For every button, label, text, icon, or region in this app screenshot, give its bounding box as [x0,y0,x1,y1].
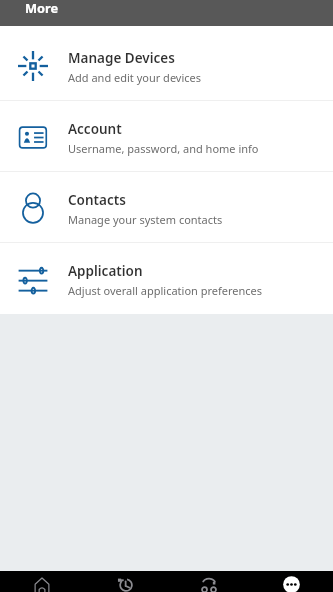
staticText: Application [68,262,143,280]
button[interactable]: More [250,574,333,592]
staticText: Manage Devices [68,49,175,67]
staticText: Username, password, and home info [68,141,259,156]
button[interactable]: Home [0,574,83,592]
staticText: More [25,0,59,16]
staticText: Adjust overall application preferences [68,283,263,298]
staticText: Add and edit your devices [68,70,202,85]
button[interactable]: Account [0,101,333,172]
button[interactable]: Transfer [167,574,250,592]
button[interactable]: Manage Devices [0,30,333,101]
staticText: Contacts [68,191,126,209]
staticText: Manage your system contacts [68,212,223,227]
staticText: Account [68,120,122,138]
button[interactable]: Application [0,243,333,314]
button[interactable]: Contacts [0,172,333,243]
button[interactable]: History [83,574,166,592]
